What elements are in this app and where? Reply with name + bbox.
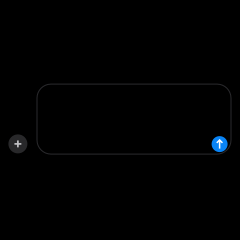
button[interactable]: Send <box>212 136 228 152</box>
button[interactable]: Add attachment <box>8 134 27 153</box>
button[interactable]: Message <box>37 84 231 154</box>
